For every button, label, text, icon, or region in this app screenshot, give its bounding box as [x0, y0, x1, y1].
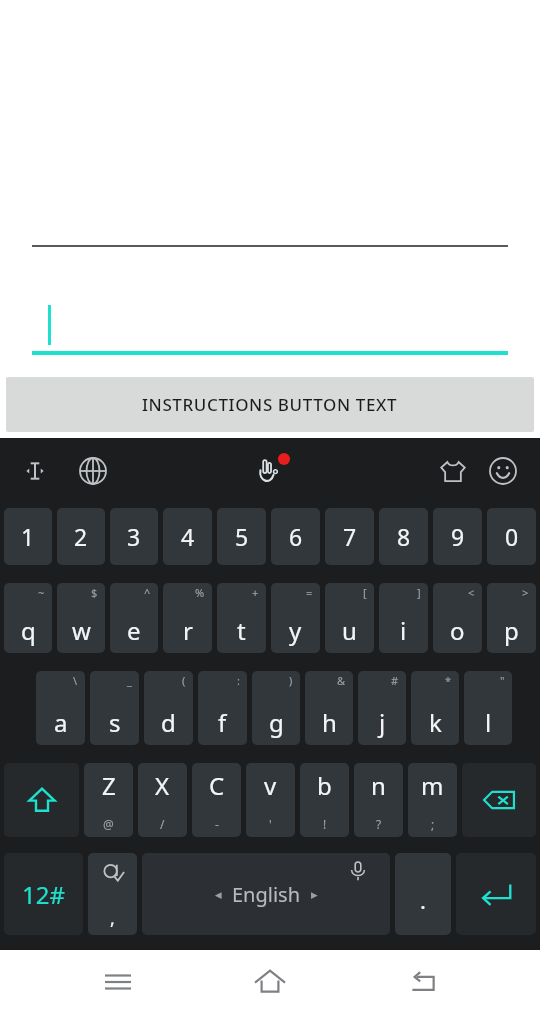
staticText: t: [237, 614, 246, 647]
staticText: v: [264, 769, 277, 802]
staticText: s: [109, 706, 121, 739]
staticText: 0: [505, 521, 519, 552]
button[interactable]: &: [305, 671, 353, 745]
button[interactable]: 12#: [4, 853, 83, 935]
staticText: 3: [127, 521, 141, 552]
staticText: u: [342, 614, 357, 647]
button[interactable]: 0: [487, 508, 536, 565]
staticText: @: [103, 816, 114, 832]
staticText: =: [306, 585, 313, 600]
staticText: n: [371, 769, 386, 802]
button[interactable]: 6: [271, 508, 320, 565]
button[interactable]: INSTRUCTIONS BUTTON TEXT: [6, 377, 534, 432]
staticText: p: [504, 614, 519, 647]
staticText: 6: [289, 521, 303, 552]
button[interactable]: Shift: [4, 763, 79, 837]
button[interactable]: (: [144, 671, 193, 745]
button[interactable]: Emoji: [478, 446, 528, 496]
button[interactable]: 8: [379, 508, 428, 565]
button[interactable]: :: [198, 671, 247, 745]
staticText: d: [161, 706, 176, 739]
staticText: ~: [38, 585, 45, 600]
button[interactable]: _: [90, 671, 139, 745]
button[interactable]: 4: [163, 508, 212, 565]
staticText: r: [183, 614, 193, 647]
button[interactable]: 5: [217, 508, 266, 565]
button[interactable]: ~: [4, 583, 52, 653]
button[interactable]: ◂: [142, 853, 390, 935]
button[interactable]: Home: [235, 950, 305, 1013]
button[interactable]: b: [300, 763, 349, 837]
button[interactable]: =: [271, 583, 320, 653]
staticText: Z: [102, 769, 116, 802]
button[interactable]: +: [217, 583, 266, 653]
button[interactable]: >: [487, 583, 536, 653]
button[interactable]: 9: [433, 508, 482, 565]
button[interactable]: ": [464, 671, 512, 745]
button[interactable]: <: [433, 583, 482, 653]
staticText: ^: [144, 585, 151, 600]
button[interactable]: [: [325, 583, 374, 653]
staticText: X: [155, 769, 170, 802]
button[interactable]: .: [395, 853, 451, 935]
button[interactable]: 3: [110, 508, 158, 565]
button[interactable]: ]: [379, 583, 428, 653]
staticText: INSTRUCTIONS BUTTON TEXT: [142, 393, 398, 416]
staticText: j: [379, 706, 386, 739]
staticText: q: [21, 614, 36, 647]
staticText: m: [421, 769, 444, 802]
button[interactable]: Enter: [456, 853, 536, 935]
staticText: English: [232, 881, 301, 908]
staticText: 5: [235, 521, 249, 552]
button[interactable]: #: [358, 671, 406, 745]
button[interactable]: 2: [57, 508, 105, 565]
staticText: a: [54, 706, 68, 739]
staticText: 7: [343, 521, 357, 552]
staticText: 9: [451, 521, 465, 552]
button[interactable]: ): [252, 671, 300, 745]
staticText: (: [182, 673, 186, 688]
button[interactable]: Theme: [428, 446, 478, 496]
button[interactable]: X: [138, 763, 187, 837]
button[interactable]: Back: [388, 950, 458, 1013]
staticText: f: [218, 706, 227, 739]
button[interactable]: Z: [84, 763, 133, 837]
staticText: >: [522, 585, 529, 600]
staticText: \: [73, 673, 78, 688]
button[interactable]: m: [408, 763, 457, 837]
staticText: $: [91, 585, 98, 600]
staticText: y: [289, 614, 302, 647]
button[interactable]: *: [411, 671, 459, 745]
button[interactable]: 7: [325, 508, 374, 565]
staticText: l: [485, 706, 492, 739]
button[interactable]: Backspace: [462, 763, 536, 837]
staticText: e: [127, 614, 141, 647]
button[interactable]: 1: [4, 508, 52, 565]
button[interactable]: Handwriting: [243, 444, 297, 498]
button[interactable]: v: [246, 763, 295, 837]
staticText: /: [160, 816, 165, 832]
staticText: ): [289, 673, 293, 688]
staticText: :: [237, 673, 240, 688]
staticText: C: [209, 769, 225, 802]
button[interactable]: ^: [110, 583, 158, 653]
button[interactable]: $: [57, 583, 105, 653]
staticText: +: [252, 585, 259, 600]
button[interactable]: Recent apps: [83, 950, 153, 1013]
staticText: 12#: [22, 878, 65, 911]
button[interactable]: Language: [68, 446, 118, 496]
staticText: 8: [397, 521, 411, 552]
staticText: g: [269, 706, 284, 739]
staticText: ]: [417, 585, 421, 600]
staticText: i: [400, 614, 407, 647]
button[interactable]: C: [192, 763, 241, 837]
button[interactable]: Auto correct: [88, 853, 137, 935]
button[interactable]: \: [36, 671, 85, 745]
button[interactable]: [32, 260, 508, 355]
staticText: #: [391, 673, 399, 688]
button[interactable]: %: [163, 583, 212, 653]
button[interactable]: n: [354, 763, 403, 837]
staticText: ,: [110, 906, 115, 931]
button[interactable]: Cursor control: [10, 446, 60, 496]
staticText: w: [72, 614, 91, 647]
